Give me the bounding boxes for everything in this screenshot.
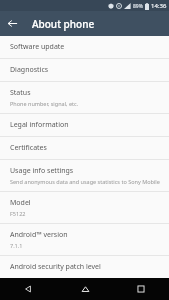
staticText: Send anonymous data and usage statistics…: [10, 178, 160, 185]
button[interactable]: Diagnostics: [0, 59, 169, 81]
button[interactable]: Usage info settings: [0, 160, 169, 191]
button[interactable]: Back: [0, 11, 25, 36]
button[interactable]: Home: [65, 278, 105, 300]
button[interactable]: Back: [8, 278, 48, 300]
staticText: F5122: [10, 210, 26, 217]
button[interactable]: Software update: [0, 36, 169, 58]
button[interactable]: Android™ version: [0, 224, 169, 255]
staticText: Software update: [10, 42, 65, 52]
staticText: Model: [10, 198, 31, 208]
staticText: Certificates: [10, 143, 47, 153]
staticText: 89%: [133, 3, 143, 10]
staticText: Android security patch level: [10, 262, 101, 272]
button[interactable]: Certificates: [0, 137, 169, 159]
button[interactable]: Android security patch level: [0, 256, 169, 278]
staticText: 14:36: [151, 2, 167, 10]
staticText: Legal information: [10, 120, 69, 130]
button[interactable]: Model: [0, 192, 169, 223]
button[interactable]: Status: [0, 82, 169, 113]
staticText: 7.1.1: [10, 242, 23, 249]
staticText: Android™ version: [10, 230, 68, 240]
staticText: Phone number, signal, etc.: [10, 100, 79, 107]
staticText: Diagnostics: [10, 65, 49, 75]
staticText: Usage info settings: [10, 166, 74, 176]
staticText: About phone: [32, 17, 95, 31]
button[interactable]: Recent apps: [121, 278, 161, 300]
button[interactable]: Legal information: [0, 114, 169, 136]
staticText: Status: [10, 88, 31, 98]
